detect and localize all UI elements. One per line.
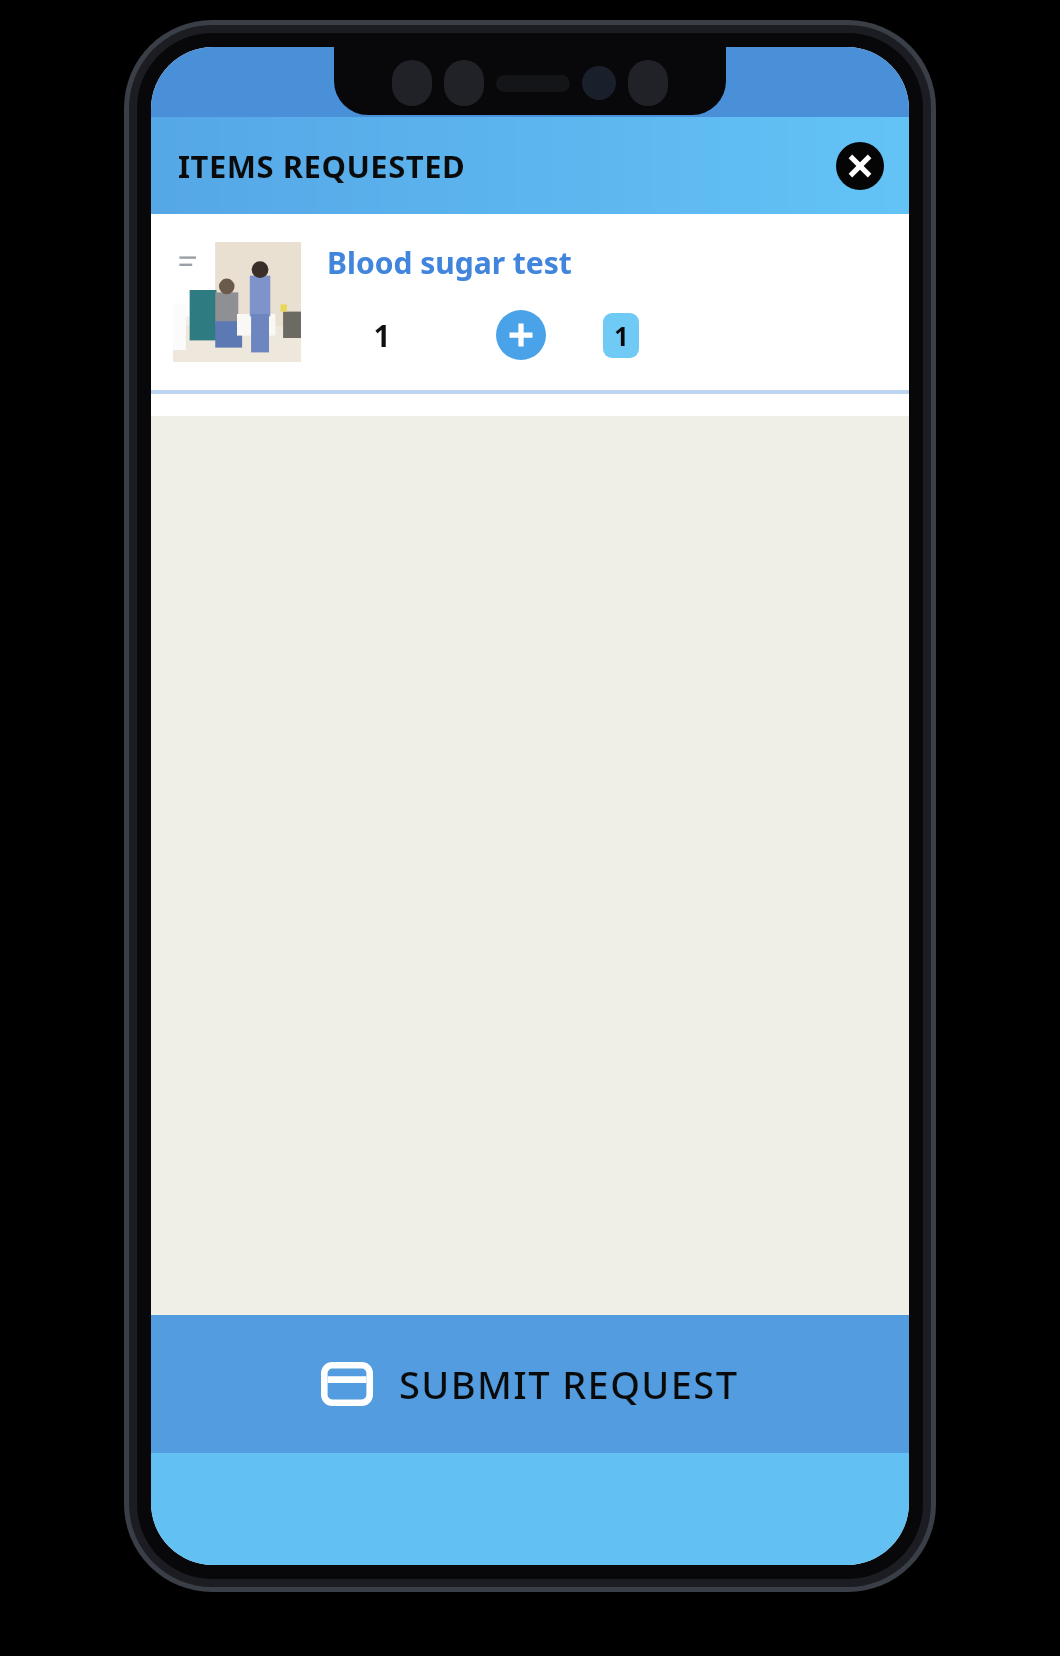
staticText: 1 — [614, 318, 629, 353]
button[interactable]: Close — [833, 139, 887, 193]
button[interactable]: SUBMIT REQUEST — [151, 1315, 909, 1453]
button[interactable]: Blood sugar test — [151, 214, 909, 390]
staticText: SUBMIT REQUEST — [399, 1358, 739, 1410]
staticText: ITEMS REQUESTED — [178, 145, 466, 187]
button[interactable]: Add one — [493, 307, 549, 363]
button[interactable]: 1 — [603, 313, 639, 358]
staticText: 1 — [323, 315, 441, 356]
staticText: Blood sugar test — [327, 242, 572, 283]
